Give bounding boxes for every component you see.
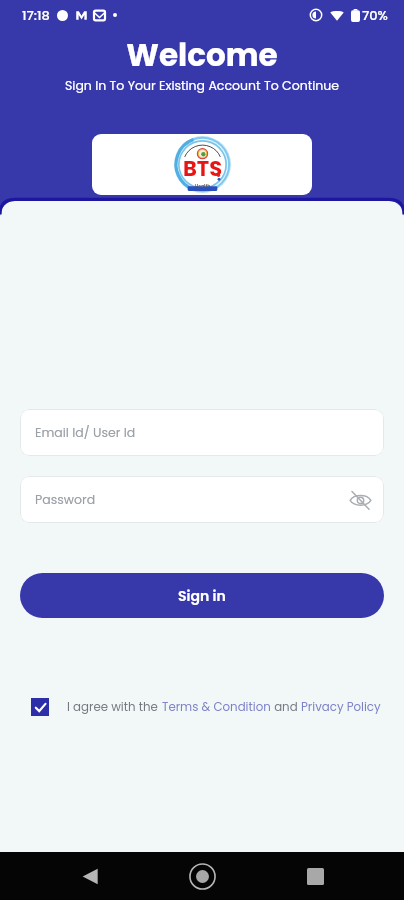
button[interactable]: Show password <box>346 486 374 514</box>
staticText: Welcome <box>0 33 404 76</box>
staticText: and <box>271 699 301 716</box>
other: I agree checkbox <box>31 698 49 716</box>
button[interactable]: Home <box>179 853 225 899</box>
staticText: Sign In To Your Existing Account To Cont… <box>0 77 404 94</box>
button[interactable]: Privacy Policy <box>301 699 381 716</box>
button[interactable]: Password <box>20 476 384 523</box>
button[interactable]: Back <box>67 853 113 899</box>
staticText: 70% <box>362 6 388 24</box>
button[interactable]: Sign in <box>20 573 384 618</box>
staticText: Email Id/ User Id <box>35 424 136 441</box>
button[interactable]: Email Id/ User Id <box>20 409 384 456</box>
button[interactable]: Terms & Condition <box>162 699 271 716</box>
staticText: Sign in <box>178 586 226 606</box>
button[interactable]: Recents <box>292 853 338 899</box>
staticText: I agree with the <box>67 699 162 716</box>
staticText: 17:18 <box>22 6 50 24</box>
staticText: Health <box>195 183 211 189</box>
button[interactable]: I agree checkbox <box>31 698 396 716</box>
staticText: Password <box>35 491 96 508</box>
staticText: BTS <box>183 154 223 183</box>
